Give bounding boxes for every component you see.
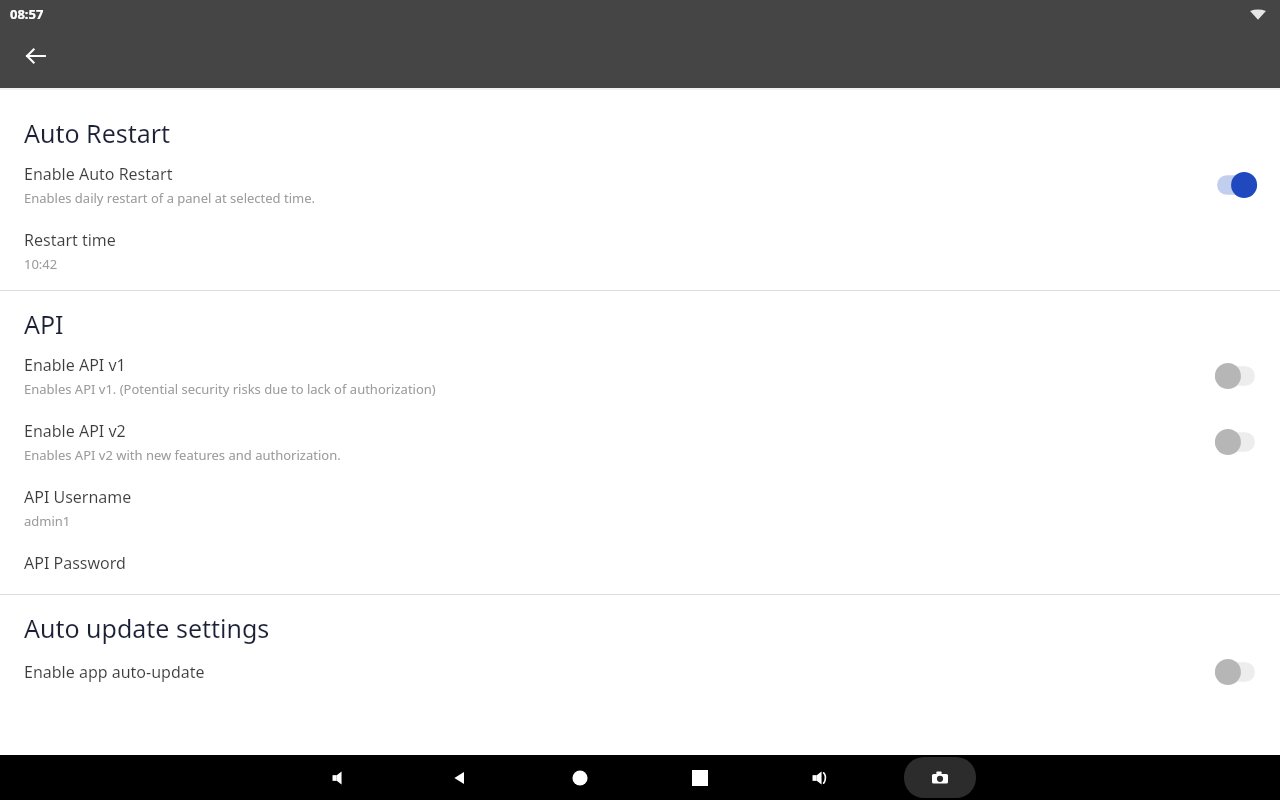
staticText: API (24, 307, 64, 341)
staticText: Enables daily restart of a panel at sele… (24, 189, 315, 207)
button[interactable]: Back (12, 32, 60, 80)
button[interactable]: API Username (0, 486, 1280, 530)
staticText: admin1 (24, 512, 71, 530)
button[interactable]: Enabled (1214, 171, 1258, 199)
button[interactable]: Disabled (1214, 362, 1258, 390)
button[interactable]: Volume down (318, 755, 362, 800)
button[interactable]: Disabled (1214, 428, 1258, 456)
staticText: Restart time (24, 229, 116, 251)
staticText: Enable API v2 (24, 420, 126, 442)
button[interactable]: Recents (678, 755, 722, 800)
staticText: API Username (24, 486, 132, 508)
staticText: Enable API v1 (24, 354, 126, 376)
button[interactable]: Enable Auto Restart (0, 163, 1280, 207)
staticText: Enable Auto Restart (24, 163, 173, 185)
button[interactable]: Enable app auto-update (0, 658, 1280, 686)
button[interactable]: Disabled (1214, 658, 1258, 686)
other: Wi-Fi (1246, 3, 1270, 27)
button[interactable]: Volume up (798, 755, 842, 800)
button[interactable]: Restart time (0, 229, 1280, 273)
staticText: Auto update settings (24, 611, 270, 645)
button[interactable]: Enable API v2 (0, 420, 1280, 464)
button[interactable]: Back (438, 755, 482, 800)
staticText: Auto Restart (24, 116, 171, 150)
staticText: Enables API v2 with new features and aut… (24, 446, 341, 464)
button[interactable]: Enable API v1 (0, 354, 1280, 398)
staticText: Enables API v1. (Potential security risk… (24, 380, 436, 398)
staticText: 10:42 (24, 255, 58, 273)
button[interactable]: API Password (0, 552, 1280, 574)
staticText: 08:57 (10, 5, 44, 23)
button[interactable]: Screenshot (904, 757, 976, 798)
staticText: API Password (24, 552, 126, 574)
staticText: Enable app auto-update (24, 661, 205, 683)
button[interactable]: Home (558, 755, 602, 800)
